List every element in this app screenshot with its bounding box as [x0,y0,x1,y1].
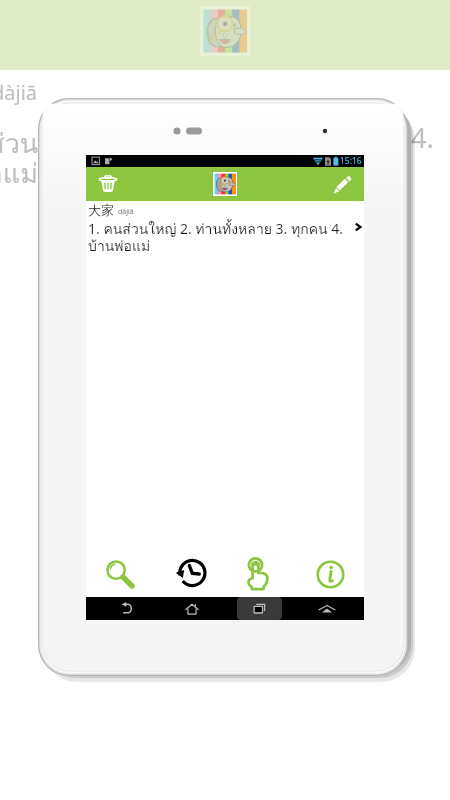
button[interactable]: Handwriting [224,551,294,597]
button[interactable]: App icon [213,172,237,196]
staticText: 1. คนส่วนใหญ่ 2. ท่านทั้งหลาย 3. ทุกคน 4… [88,218,346,257]
staticText: dàjiā [118,207,134,217]
button[interactable]: Back [86,597,155,620]
button[interactable]: Home [155,597,224,620]
button[interactable]: Info [294,551,364,597]
button[interactable]: Menu [294,597,364,620]
button[interactable]: Edit [318,167,364,201]
button[interactable]: Recents [224,597,294,620]
button[interactable]: 大家 [86,201,364,261]
staticText: 15:16 [340,155,362,167]
button[interactable]: History [155,551,224,597]
button[interactable]: Delete [86,167,132,201]
staticText: 4. [411,119,434,156]
staticText: บ้านพ่อแม่ [0,152,38,195]
staticText: 大家 [88,202,114,218]
button[interactable]: Search [86,551,155,597]
staticText: 1. คนส่วน [0,122,39,165]
staticText: dàjiā [0,79,38,106]
